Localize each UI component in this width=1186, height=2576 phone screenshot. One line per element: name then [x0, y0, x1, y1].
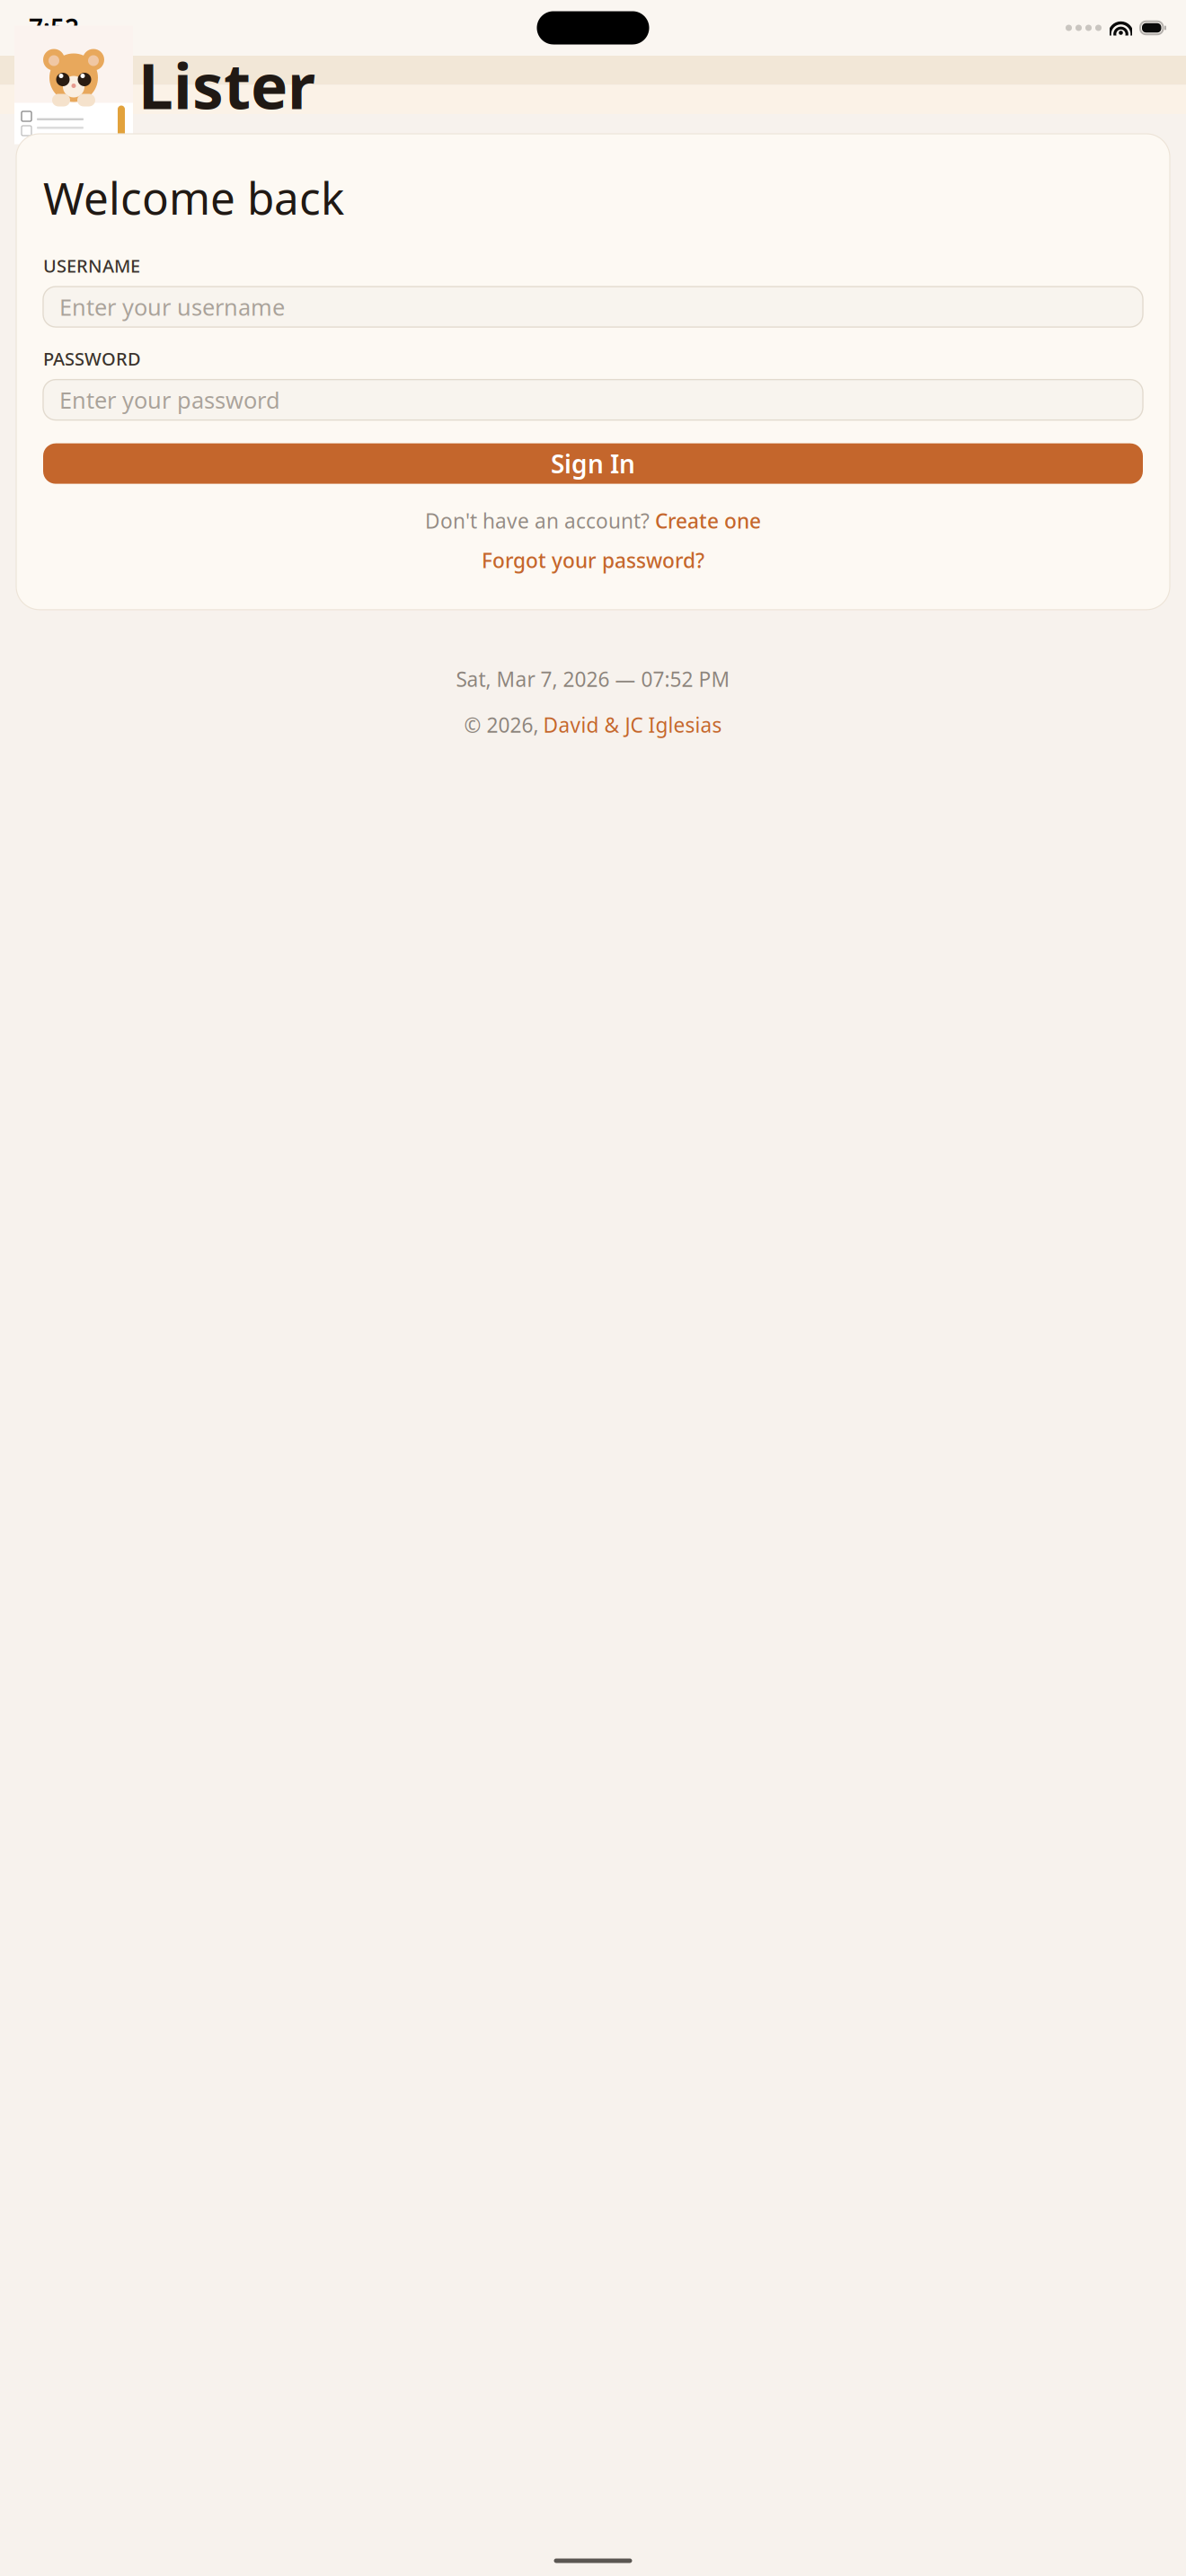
staticText: Enter your username: [59, 292, 285, 322]
staticText: © 2026,: [464, 711, 539, 738]
staticText: PASSWORD: [43, 347, 141, 371]
staticText: Welcome back: [43, 168, 344, 227]
button[interactable]: Enter your username: [43, 287, 1143, 327]
staticText: Lister: [138, 44, 315, 126]
staticText: Forgot your password?: [482, 547, 704, 574]
staticText: Don't have an account?: [425, 507, 650, 534]
button[interactable]: David & JC Iglesias: [543, 711, 722, 738]
button[interactable]: Create one: [655, 507, 761, 534]
staticText: Sign In: [551, 447, 635, 480]
button[interactable]: Sign In: [43, 443, 1143, 484]
button[interactable]: Forgot your password?: [43, 547, 1143, 574]
staticText: USERNAME: [43, 254, 140, 278]
staticText: 7:52: [29, 11, 79, 45]
button[interactable]: Enter your password: [43, 380, 1143, 420]
staticText: Enter your password: [59, 385, 280, 415]
staticText: Sat, Mar 7, 2026 — 07:52 PM: [456, 665, 730, 692]
staticText: Create one: [655, 507, 761, 534]
staticText: David & JC Iglesias: [543, 711, 722, 738]
